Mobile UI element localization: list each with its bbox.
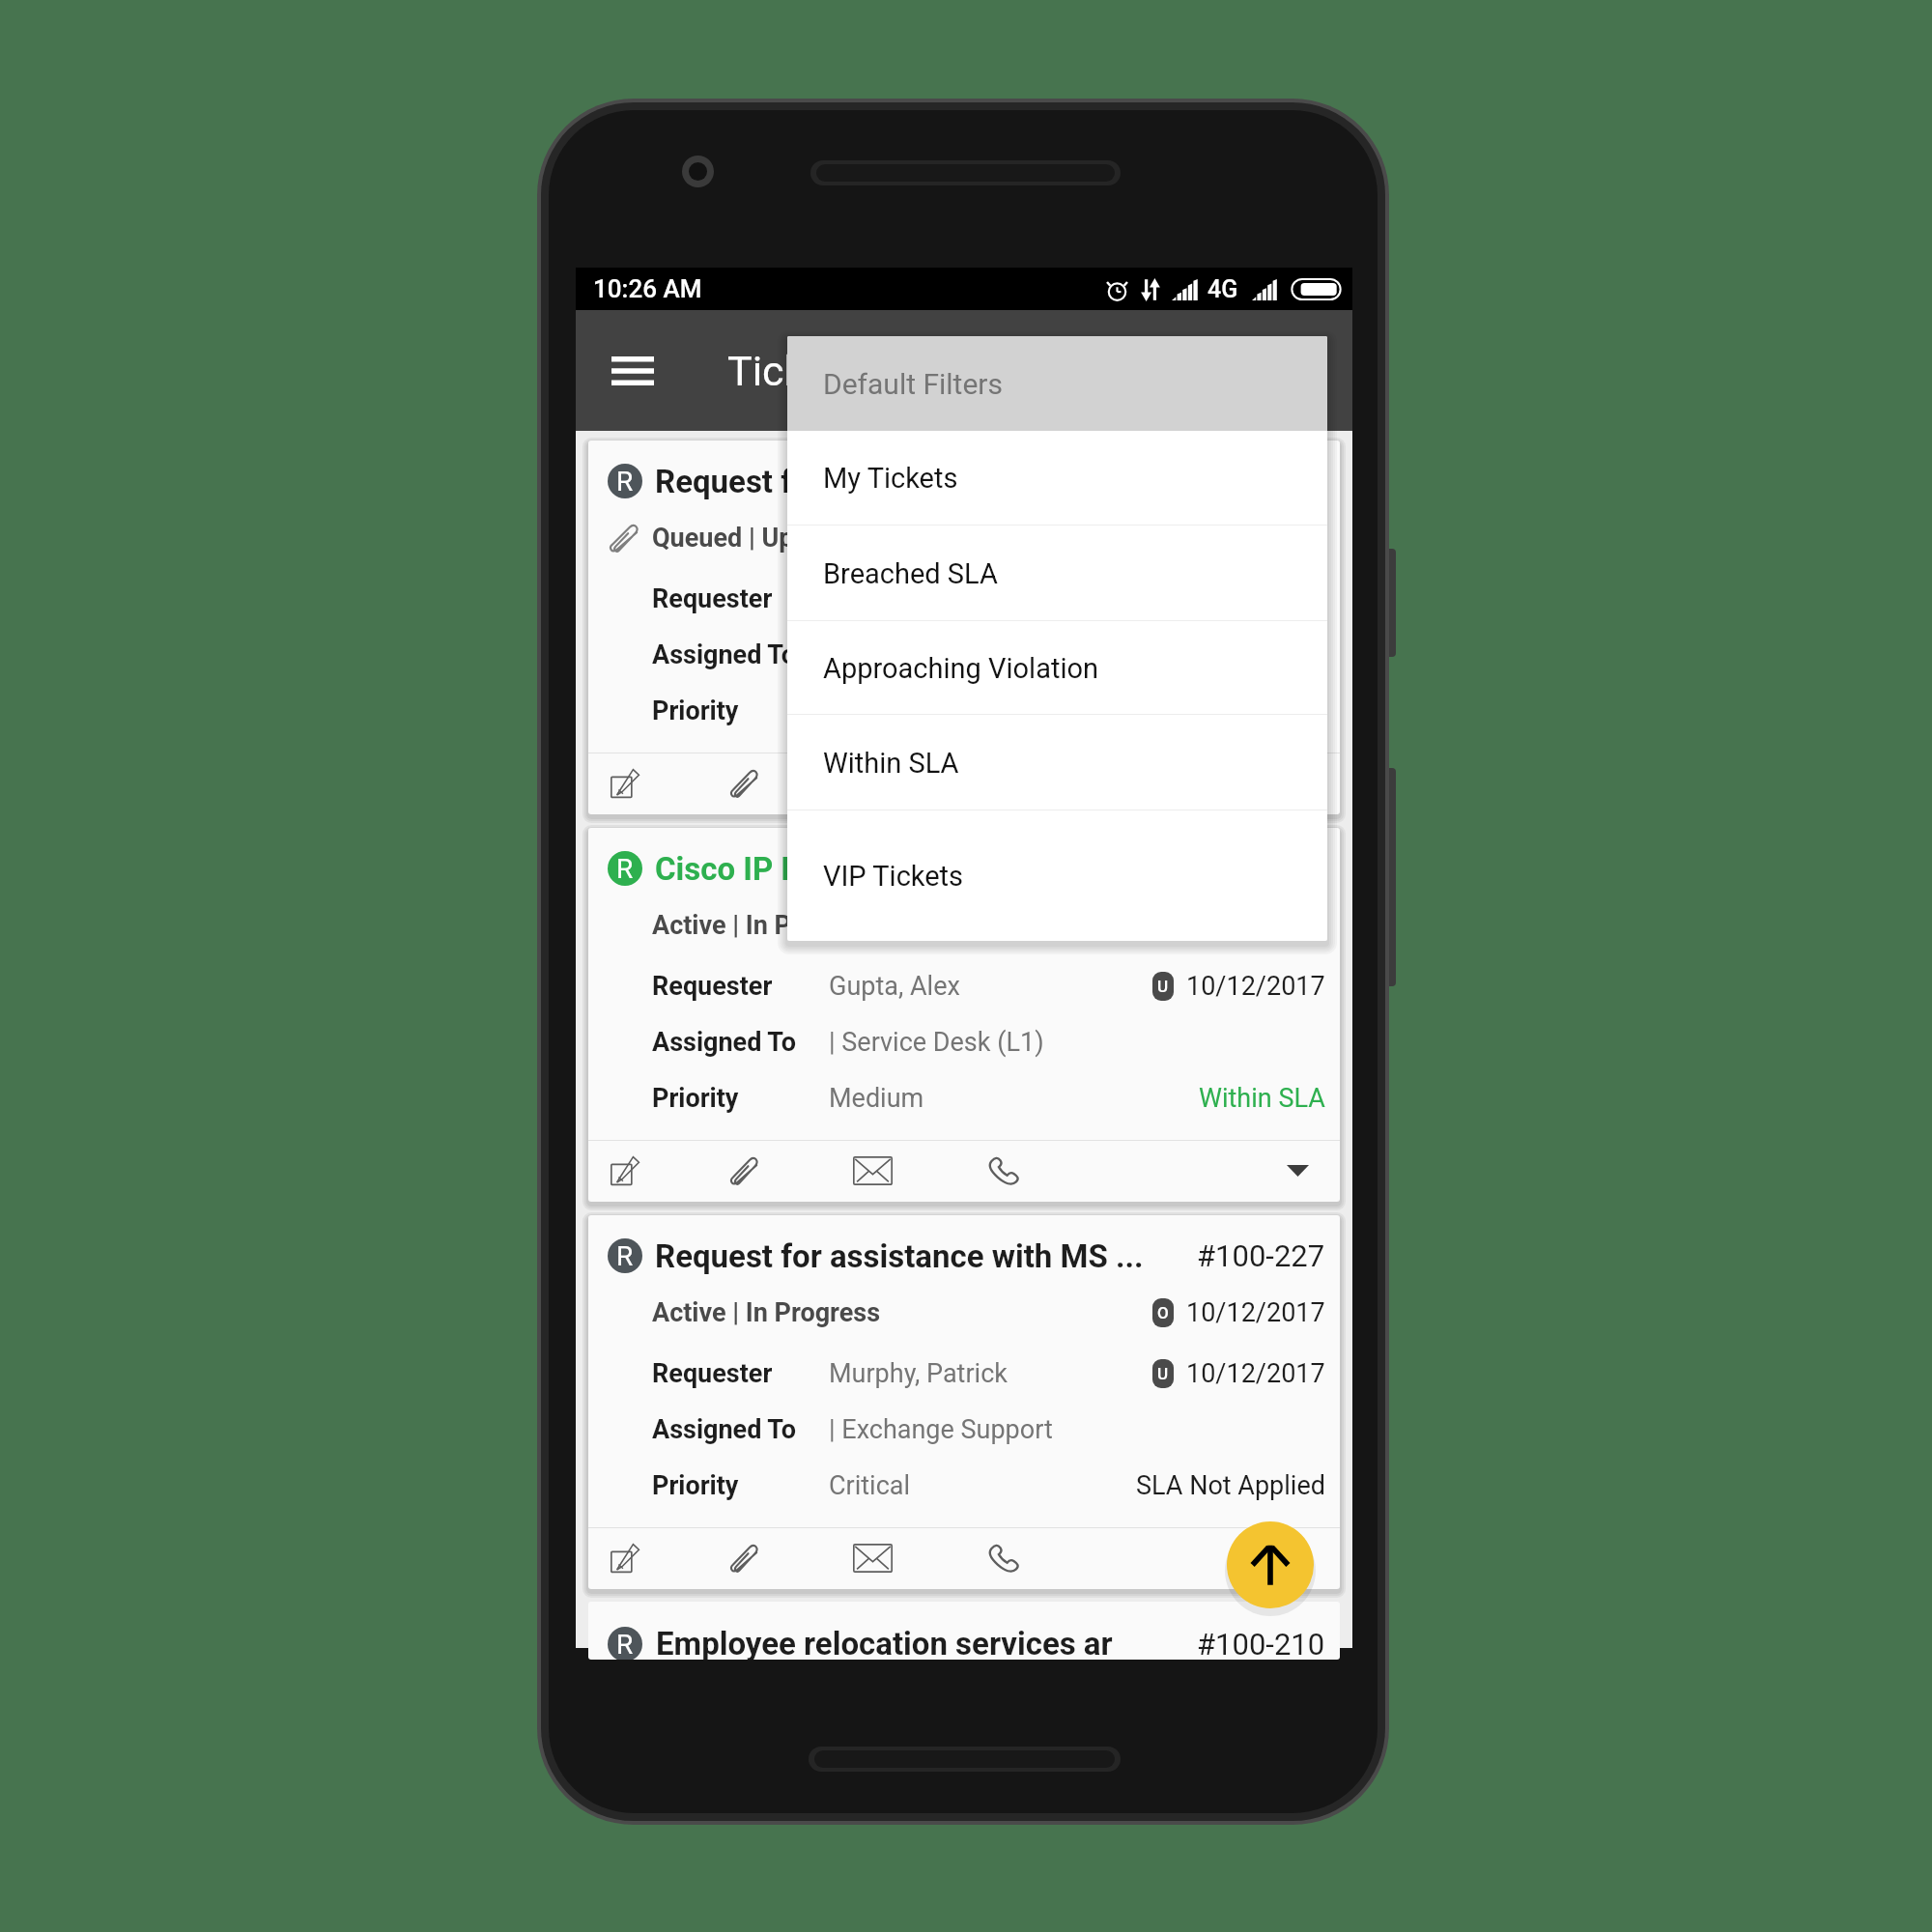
button[interactable]: VIP Tickets bbox=[787, 810, 1327, 941]
staticText: Gupta, Alex bbox=[829, 971, 960, 1002]
staticText: Murphy, Patrick bbox=[829, 1358, 1008, 1389]
button[interactable]: Scroll to top bbox=[1227, 1521, 1314, 1608]
staticText: Requester bbox=[652, 1358, 829, 1389]
staticText: 10/12/2017 bbox=[1186, 1358, 1325, 1389]
staticText: Priority bbox=[652, 1470, 829, 1501]
staticText: | Exchange Support bbox=[829, 1414, 1053, 1445]
button[interactable]: Attach file bbox=[724, 1151, 764, 1191]
staticText: R bbox=[616, 466, 634, 497]
button[interactable]: Edit bbox=[605, 1151, 645, 1191]
staticText: Assigned To bbox=[652, 639, 829, 670]
staticText: R bbox=[616, 1240, 634, 1272]
button[interactable]: More actions bbox=[1280, 1541, 1315, 1576]
staticText: U bbox=[1157, 977, 1169, 996]
staticText: SLA Not Applied bbox=[1136, 1470, 1325, 1501]
staticText: Assigned To bbox=[652, 1414, 829, 1445]
staticText: 10:26 AM bbox=[593, 274, 702, 303]
staticText: 10/12/2017 bbox=[1186, 971, 1325, 1002]
staticText: Priority bbox=[652, 696, 829, 726]
staticText: Requester bbox=[652, 971, 829, 1002]
staticText: R bbox=[616, 853, 634, 885]
staticText: U bbox=[1157, 1364, 1169, 1383]
button[interactable]: R bbox=[588, 1215, 1340, 1589]
staticText: Tickets bbox=[727, 347, 863, 395]
button[interactable]: R bbox=[588, 828, 1340, 1202]
staticText: Priority bbox=[652, 1083, 829, 1114]
staticText: Critical bbox=[829, 1470, 911, 1501]
staticText: Breached SLA bbox=[823, 557, 998, 590]
button[interactable]: R bbox=[588, 440, 1340, 814]
staticText: Within SLA bbox=[823, 747, 959, 780]
staticText: Within SLA bbox=[1199, 1083, 1325, 1114]
staticText: Queued | Up bbox=[652, 523, 794, 554]
button[interactable]: R bbox=[588, 1602, 1340, 1660]
button[interactable]: Approaching Violation bbox=[787, 621, 1327, 715]
button[interactable]: Attach file bbox=[724, 763, 764, 804]
staticText: Default Filters bbox=[823, 367, 1003, 401]
staticText: Requester bbox=[652, 583, 829, 614]
button[interactable]: My Tickets bbox=[787, 431, 1327, 526]
button[interactable]: Within SLA bbox=[787, 715, 1327, 810]
staticText: #100-227 bbox=[1197, 1238, 1325, 1273]
button[interactable]: Attach file bbox=[724, 1538, 764, 1578]
button[interactable]: Breached SLA bbox=[787, 526, 1327, 621]
staticText: Active | In P bbox=[652, 910, 791, 941]
button[interactable]: Email bbox=[852, 1538, 893, 1578]
staticText: O bbox=[1157, 1303, 1169, 1322]
staticText: 4G bbox=[1207, 275, 1238, 303]
staticText: VIP Tickets bbox=[823, 860, 964, 893]
staticText: Active | In Progress bbox=[652, 1297, 881, 1328]
button[interactable]: Open navigation menu bbox=[601, 339, 665, 403]
staticText: Employee relocation services ar bbox=[656, 1625, 1113, 1660]
staticText: Assigned To bbox=[652, 1027, 829, 1058]
button[interactable]: Email bbox=[852, 763, 893, 804]
staticText: Request f bbox=[655, 463, 793, 500]
staticText: 10/12/2017 bbox=[1186, 1297, 1325, 1328]
staticText: Medium bbox=[829, 1083, 924, 1114]
button[interactable]: More actions bbox=[1280, 1153, 1315, 1188]
staticText: Cisco IP P bbox=[655, 850, 802, 888]
staticText: My Tickets bbox=[823, 462, 958, 495]
button[interactable]: Email bbox=[852, 1151, 893, 1191]
staticText: R bbox=[616, 1629, 634, 1660]
staticText: #100-210 bbox=[1197, 1627, 1325, 1660]
button[interactable]: Edit bbox=[605, 763, 645, 804]
button[interactable]: Edit bbox=[605, 1538, 645, 1578]
staticText: Request for assistance with MS ... bbox=[655, 1237, 1144, 1275]
staticText: | Service Desk (L1) bbox=[829, 1027, 1044, 1058]
button[interactable]: Call bbox=[983, 1538, 1024, 1578]
staticText: Approaching Violation bbox=[823, 652, 1099, 685]
button[interactable]: Call bbox=[983, 1151, 1024, 1191]
